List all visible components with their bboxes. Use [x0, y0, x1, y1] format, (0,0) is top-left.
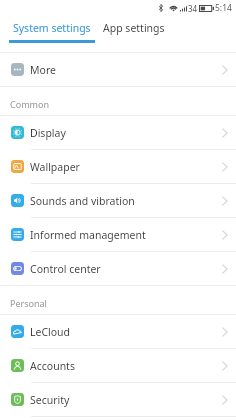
button[interactable]: More	[0, 53, 236, 86]
button[interactable]: LeCloud	[0, 315, 236, 348]
button[interactable]: System settings	[9, 15, 95, 52]
staticText: 34	[188, 3, 198, 14]
button[interactable]: Display	[0, 116, 236, 149]
button[interactable]: Control center	[0, 252, 236, 285]
staticText: Accounts	[30, 359, 75, 373]
button[interactable]: Wallpaper	[0, 150, 236, 183]
staticText: App settings	[103, 21, 165, 35]
button[interactable]: Accounts	[0, 349, 236, 382]
staticText: Personal	[10, 297, 47, 309]
button[interactable]: Security	[0, 383, 236, 416]
button[interactable]: Sounds and vibration	[0, 184, 236, 217]
staticText: More	[30, 63, 56, 77]
staticText: 5:14	[215, 2, 232, 14]
staticText: Informed management	[30, 228, 146, 242]
staticText: System settings	[13, 21, 91, 35]
staticText: Sounds and vibration	[30, 194, 135, 208]
staticText: Security	[30, 393, 70, 407]
staticText: Wallpaper	[30, 160, 80, 174]
staticText: Control center	[30, 262, 101, 276]
button[interactable]: Informed management	[0, 218, 236, 251]
button[interactable]: App settings	[98, 15, 170, 52]
staticText: Common	[10, 98, 49, 110]
staticText: LeCloud	[30, 325, 71, 339]
staticText: Display	[30, 126, 66, 140]
